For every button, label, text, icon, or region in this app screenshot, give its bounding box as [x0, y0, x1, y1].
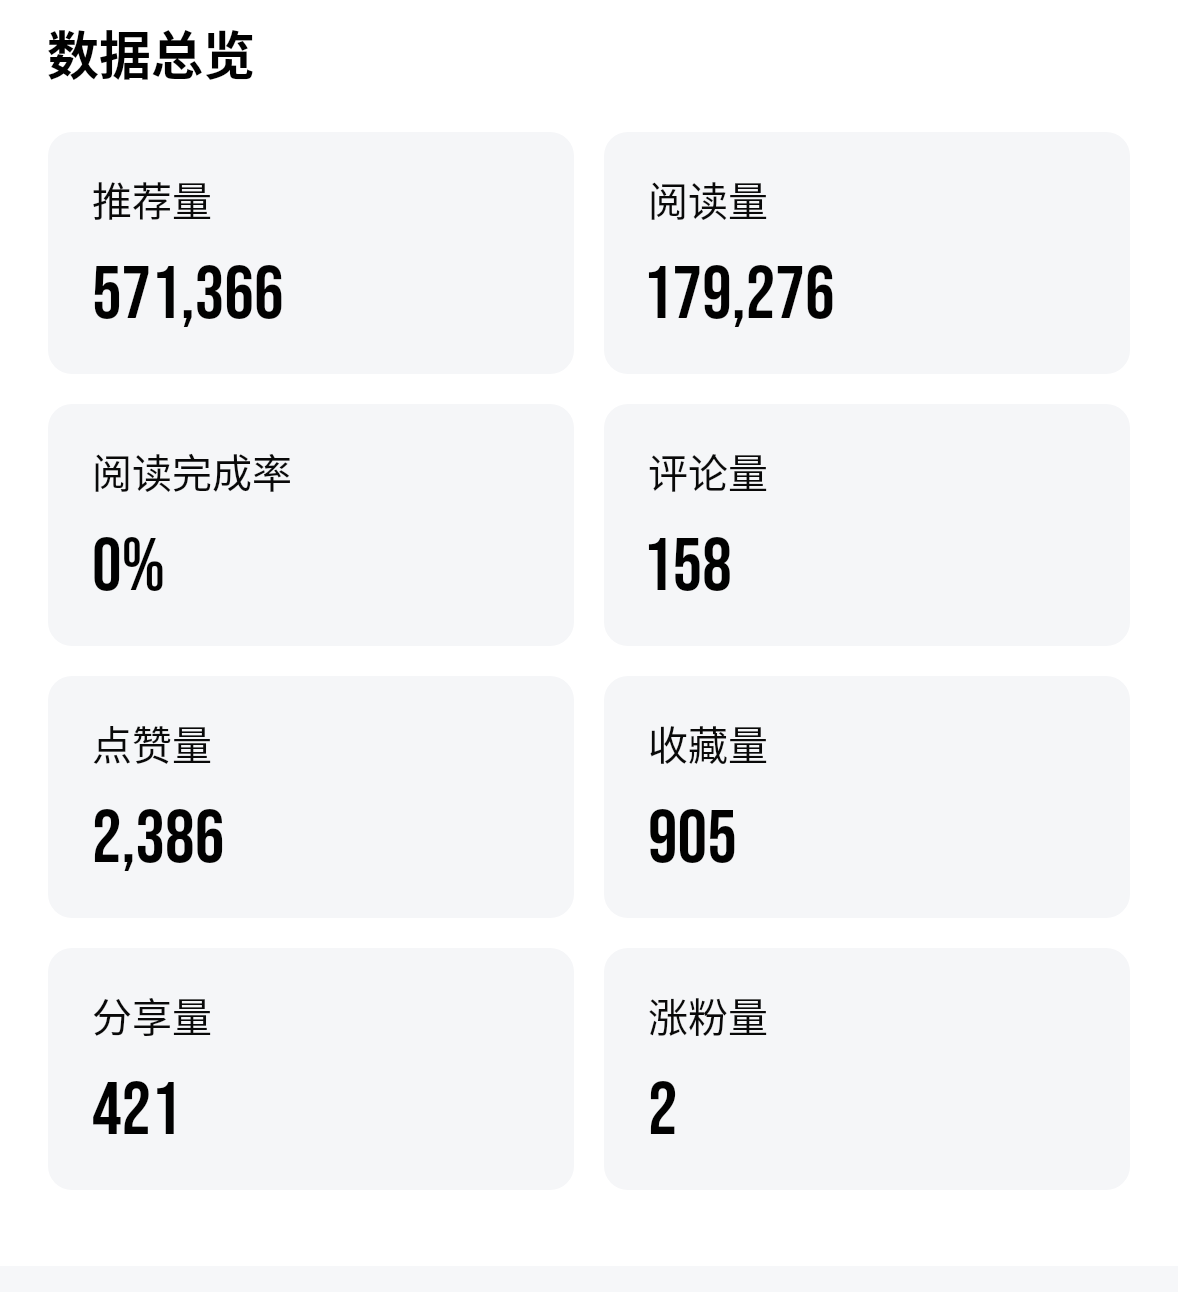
staticText: 收藏量: [648, 714, 768, 772]
staticText: 179,276: [643, 251, 835, 340]
button[interactable]: 分享量 421: [48, 948, 574, 1190]
button[interactable]: 点赞量 2,386: [48, 676, 574, 918]
staticText: 分享量: [92, 986, 212, 1044]
staticText: 阅读完成率: [92, 442, 292, 500]
staticText: 2,386: [92, 795, 225, 884]
staticText: 905: [648, 795, 737, 884]
button[interactable]: 阅读完成率 0%: [48, 404, 574, 646]
staticText: 158: [643, 523, 732, 612]
staticText: 0%: [92, 523, 166, 612]
button[interactable]: 阅读量 179,276: [604, 132, 1130, 374]
staticText: 点赞量: [92, 714, 212, 772]
staticText: 2: [648, 1067, 678, 1156]
button[interactable]: 评论量 158: [604, 404, 1130, 646]
button[interactable]: 涨粉量 2: [604, 948, 1130, 1190]
staticText: 涨粉量: [648, 986, 768, 1044]
staticText: 571,366: [92, 251, 284, 340]
staticText: 推荐量: [92, 170, 212, 228]
staticText: 421: [92, 1067, 181, 1156]
staticText: 阅读量: [648, 170, 768, 228]
staticText: 评论量: [648, 442, 768, 500]
staticText: 数据总览: [47, 15, 256, 90]
button[interactable]: 推荐量 571,366: [48, 132, 574, 374]
button[interactable]: 收藏量 905: [604, 676, 1130, 918]
